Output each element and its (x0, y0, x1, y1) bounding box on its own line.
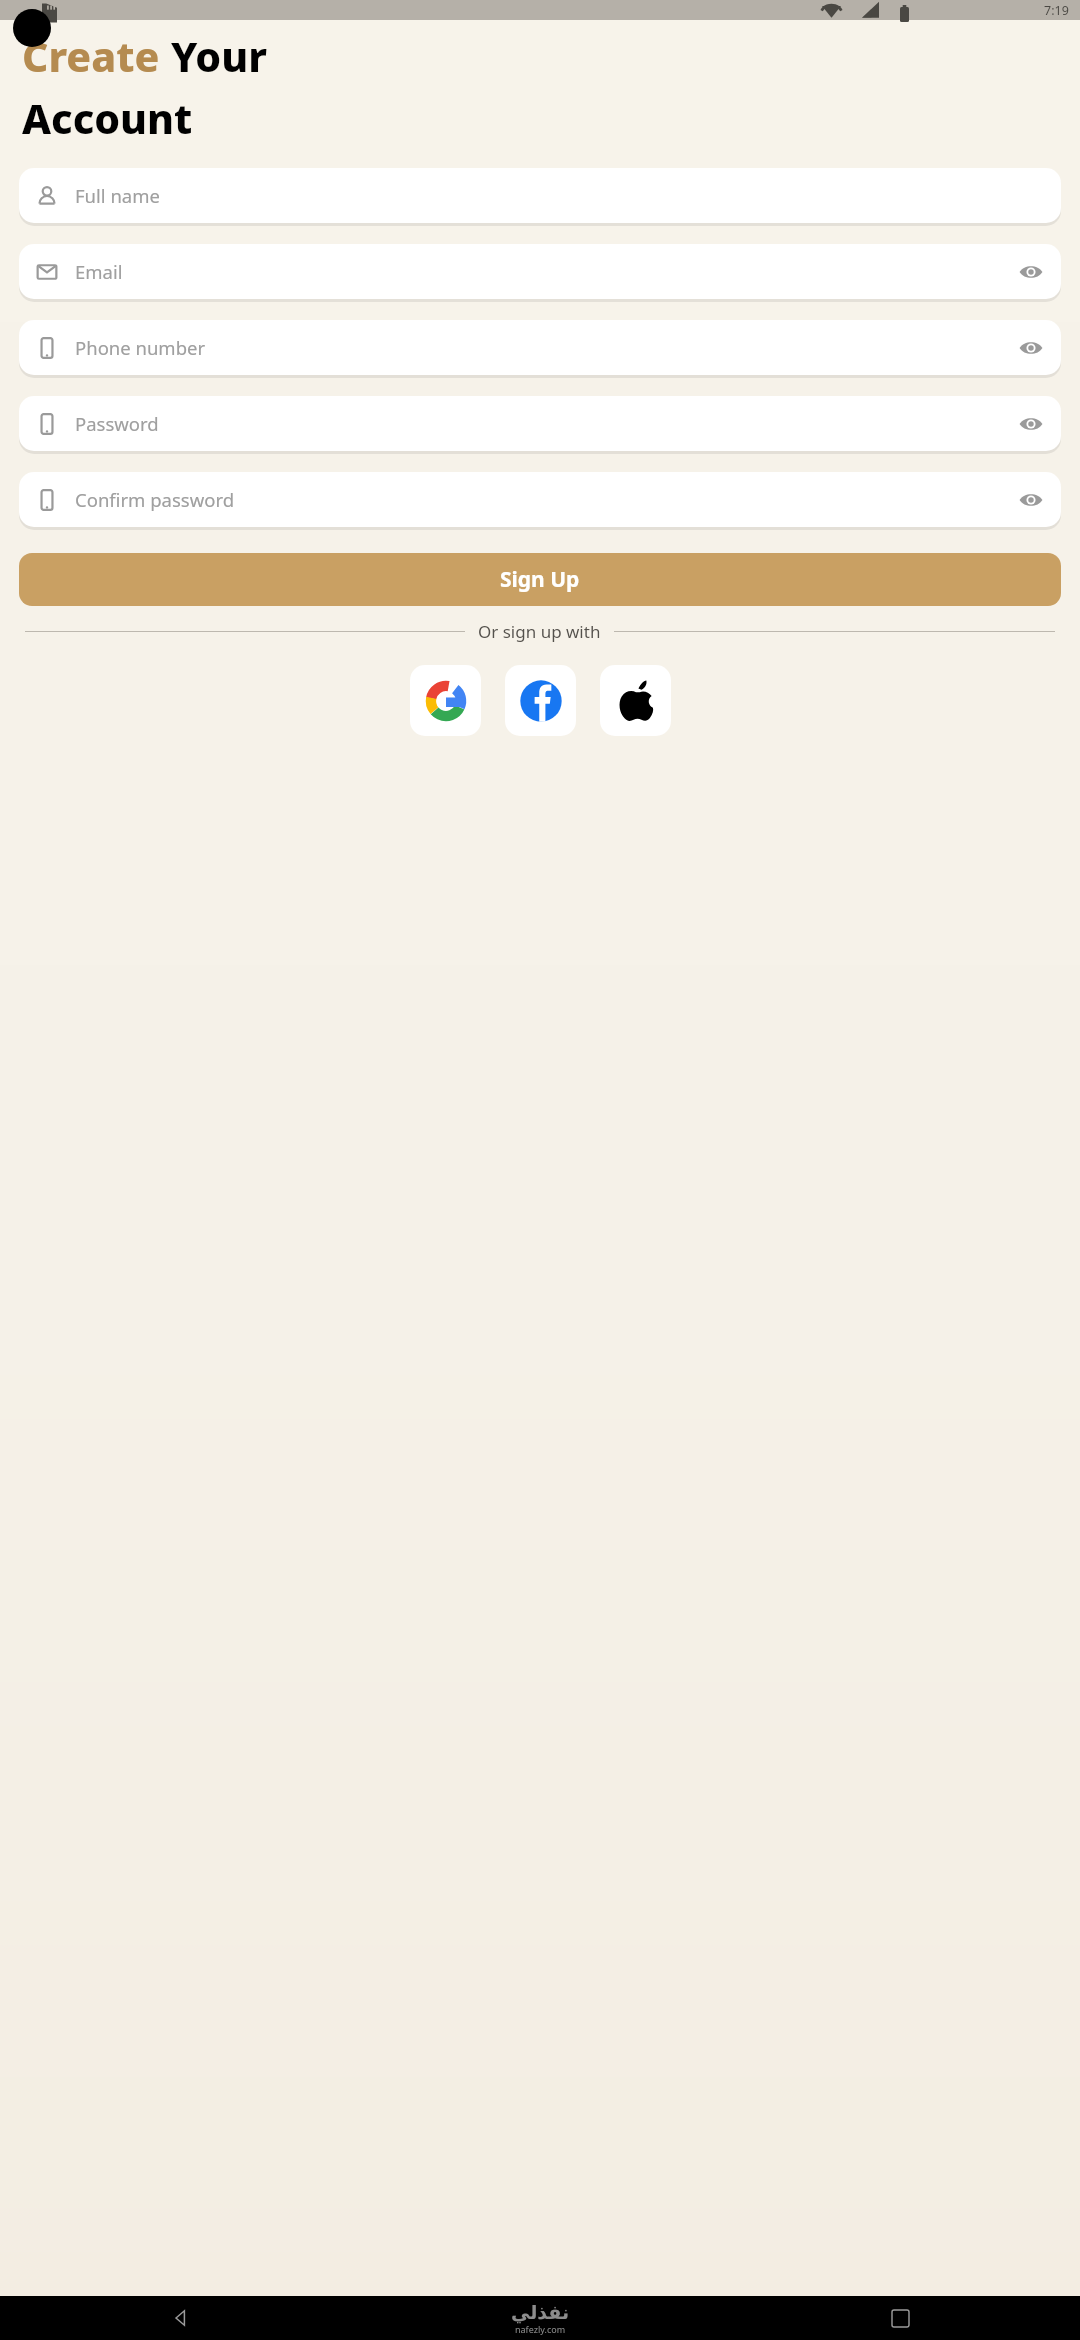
staticText: Or sign up with (478, 620, 601, 643)
button[interactable]: Recent apps (720, 2296, 1080, 2340)
button[interactable]: Sign up with Apple (600, 665, 671, 736)
button[interactable]: Sign Up (19, 553, 1061, 606)
staticText: Sign Up (500, 565, 580, 594)
button[interactable]: Email (19, 244, 1061, 299)
button[interactable]: Password (19, 396, 1061, 451)
staticText: 7:19 (1044, 2, 1069, 19)
staticText: Confirm password (75, 487, 235, 512)
button[interactable]: Toggle visibility (1016, 257, 1046, 287)
button[interactable]: Sign up with Google (410, 665, 481, 736)
staticText: Create (22, 28, 171, 84)
button[interactable]: Phone number (19, 320, 1061, 375)
staticText: Account (22, 90, 193, 146)
staticText: Full name (75, 183, 160, 208)
staticText: Phone number (75, 335, 206, 360)
button[interactable]: Toggle visibility (1016, 409, 1046, 439)
button[interactable]: Toggle visibility (1016, 333, 1046, 363)
button[interactable]: Full name (19, 168, 1061, 223)
button[interactable]: Home (360, 2296, 720, 2340)
button[interactable]: Confirm password (19, 472, 1061, 527)
staticText: نفذلي (511, 2301, 570, 2323)
button[interactable]: Back (0, 2296, 360, 2340)
staticText: Password (75, 411, 159, 436)
staticText: Your (171, 28, 267, 84)
staticText: Email (75, 259, 123, 284)
staticText: nafezly.com (515, 2323, 566, 2335)
button[interactable]: Toggle visibility (1016, 485, 1046, 515)
button[interactable]: Sign up with Facebook (505, 665, 576, 736)
